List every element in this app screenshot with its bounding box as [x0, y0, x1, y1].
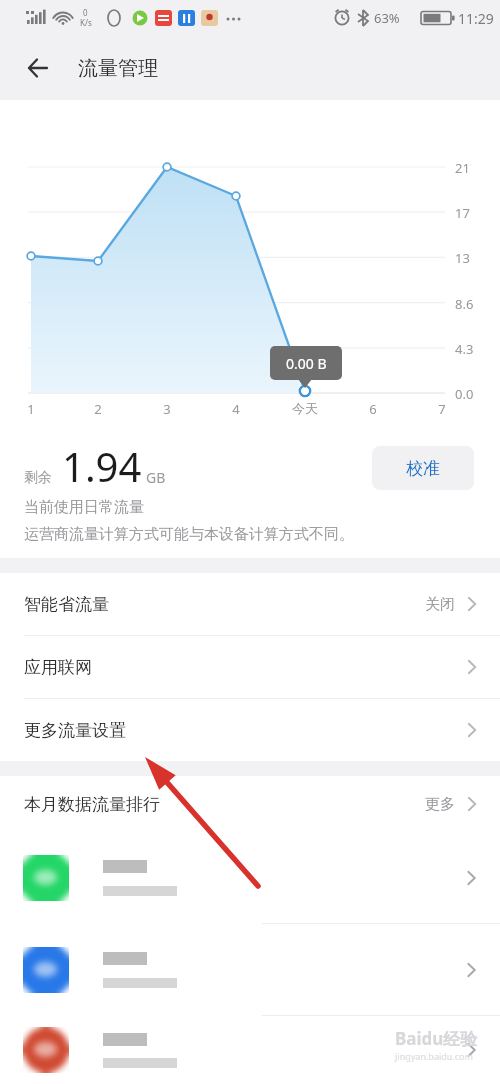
staticText: 0 — [83, 7, 88, 18]
button[interactable] — [0, 1016, 500, 1084]
button[interactable]: 更多流量设置 — [0, 699, 500, 761]
staticText: 63% — [374, 9, 400, 27]
staticText: 6 — [366, 400, 380, 418]
button[interactable]: 应用联网 — [0, 636, 500, 698]
staticText: 4.3 — [455, 340, 474, 358]
staticText: 4 — [229, 400, 243, 418]
staticText: 剩余 — [24, 469, 52, 487]
staticText: jingyan.baidu.com — [395, 1050, 473, 1062]
staticText: 11:29 — [458, 9, 494, 28]
staticText: 本月数据流量排行 — [24, 794, 160, 815]
staticText: 0.00 B — [286, 354, 327, 373]
staticText: 3 — [160, 400, 174, 418]
staticText: 1.94 — [62, 439, 142, 493]
staticText: 关闭 — [425, 595, 455, 614]
staticText: 校准 — [406, 458, 440, 479]
staticText: 流量管理 — [78, 56, 158, 81]
staticText: 应用联网 — [24, 657, 92, 678]
staticText: 8.6 — [455, 295, 474, 313]
staticText: 更多流量设置 — [24, 720, 126, 741]
button[interactable]: Back — [14, 44, 62, 92]
staticText: 21 — [455, 159, 470, 177]
button[interactable]: 智能省流量 — [0, 573, 500, 635]
button[interactable] — [0, 924, 500, 1015]
staticText: 13 — [455, 249, 470, 267]
staticText: Baidu经验 — [395, 1027, 478, 1050]
staticText: K/s — [80, 17, 92, 28]
staticText: 1 — [24, 400, 38, 418]
button[interactable]: 校准 — [372, 446, 474, 490]
staticText: 更多 — [425, 795, 455, 814]
button[interactable] — [0, 832, 500, 923]
staticText: GB — [146, 468, 166, 487]
staticText: 运营商流量计算方式可能与本设备计算方式不同。 — [24, 525, 354, 544]
staticText: 0.0 — [455, 385, 474, 403]
staticText: 2 — [91, 400, 105, 418]
button[interactable]: 本月数据流量排行 — [0, 776, 500, 832]
staticText: 7 — [435, 400, 449, 418]
staticText: 当前使用日常流量 — [24, 498, 144, 517]
staticText: 智能省流量 — [24, 594, 109, 615]
staticText: 17 — [455, 204, 470, 222]
staticText: 今天 — [288, 400, 322, 416]
